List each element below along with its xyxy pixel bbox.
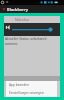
staticText: weiteres: [5, 42, 18, 46]
button[interactable]: [4, 23, 60, 36]
button[interactable]: App beenden: [6, 81, 57, 89]
staticText: Aktueller Status: unbekannt: [5, 37, 47, 41]
staticText: Mikrofon: [15, 18, 29, 22]
button[interactable]: Einstellungen anzeigen: [6, 89, 57, 97]
other: Logo: [2, 7, 6, 11]
staticText: App beenden: [9, 83, 30, 87]
staticText: Einstellungen anzeigen: [9, 91, 44, 95]
staticText: Blackberry: [7, 7, 28, 12]
